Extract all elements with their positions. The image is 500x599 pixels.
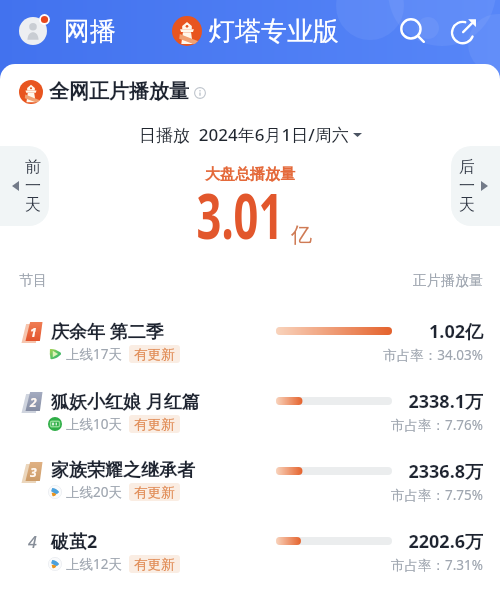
staticText: 网播 xyxy=(64,15,116,48)
staticText: 上线20天 xyxy=(66,483,122,501)
staticText: 大盘总播放量 xyxy=(205,165,295,184)
staticText: 2338.1万 xyxy=(408,389,483,414)
button[interactable]: 1 xyxy=(0,318,500,388)
staticText: 节目 xyxy=(19,272,47,290)
staticText: 2336.8万 xyxy=(408,459,483,484)
button[interactable]: 日播放 2024年6月1日/周六 xyxy=(133,121,368,148)
staticText: 全网正片播放量 xyxy=(49,79,189,104)
staticText: 灯塔专业版 xyxy=(209,15,339,48)
staticText: 2202.6万 xyxy=(408,529,483,554)
staticText: 有更新 xyxy=(134,346,175,363)
staticText: 3.01 xyxy=(197,173,283,257)
button[interactable]: 后 一 天 xyxy=(451,146,500,226)
button[interactable]: Search xyxy=(394,12,432,50)
staticText: 日播放 2024年6月1日/周六 xyxy=(139,123,349,146)
button[interactable]: 前 一 天 xyxy=(0,146,49,226)
button[interactable]: Profile xyxy=(19,15,51,47)
staticText: 市占率：34.03% xyxy=(383,346,483,364)
staticText: 市占率：7.76% xyxy=(390,416,483,434)
staticText: 正片播放量 xyxy=(413,272,483,290)
staticText: 1.02亿 xyxy=(429,319,483,344)
button[interactable]: Share xyxy=(445,12,483,50)
button[interactable]: 3 xyxy=(0,458,500,528)
staticText: 市占率：7.75% xyxy=(390,486,483,504)
staticText: 上线12天 xyxy=(66,555,122,573)
staticText: 3 xyxy=(30,464,37,480)
staticText: 4 xyxy=(28,531,37,552)
staticText: 市占率：7.31% xyxy=(390,556,483,574)
staticText: 前 一 天 xyxy=(25,157,41,215)
staticText: 上线10天 xyxy=(66,415,122,433)
staticText: 庆余年 第二季 xyxy=(51,319,164,344)
staticText: 亿 xyxy=(291,222,312,248)
staticText: 有更新 xyxy=(134,484,175,501)
staticText: 后 一 天 xyxy=(459,157,475,215)
staticText: 1 xyxy=(30,324,37,340)
button[interactable]: 4 xyxy=(0,528,500,598)
staticText: 有更新 xyxy=(134,416,175,433)
staticText: 家族荣耀之继承者 xyxy=(51,459,195,482)
staticText: 破茧2 xyxy=(51,529,98,554)
button[interactable]: 2 xyxy=(0,388,500,458)
staticText: 2 xyxy=(30,394,37,410)
staticText: 有更新 xyxy=(134,556,175,573)
staticText: 狐妖小红娘 月红篇 xyxy=(51,389,200,414)
staticText: 上线17天 xyxy=(66,345,122,363)
